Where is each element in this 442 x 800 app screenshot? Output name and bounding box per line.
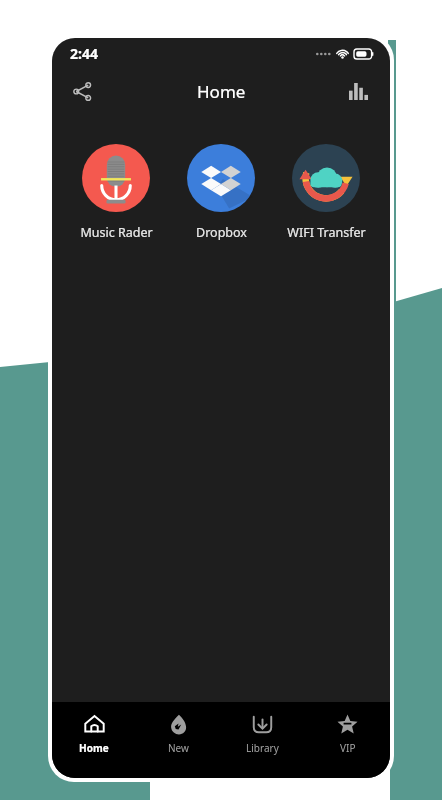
staticText: Home xyxy=(79,741,109,755)
button[interactable]: Home xyxy=(52,702,136,778)
staticText: Home xyxy=(197,80,246,103)
staticText: Music Rader xyxy=(80,224,153,241)
staticText: WIFI Transfer xyxy=(287,224,366,241)
button[interactable]: Library xyxy=(220,702,305,778)
button[interactable]: Share xyxy=(60,69,104,113)
button[interactable]: WIFI Transfer xyxy=(275,140,377,243)
button[interactable]: Dropbox xyxy=(170,140,272,243)
staticText: New xyxy=(168,741,189,755)
button[interactable]: Music Rader xyxy=(65,140,167,243)
button[interactable]: VIP xyxy=(305,702,390,778)
button[interactable]: New xyxy=(136,702,220,778)
staticText: VIP xyxy=(340,741,356,755)
button[interactable]: Equalizer xyxy=(336,69,380,113)
staticText: Dropbox xyxy=(196,224,247,241)
staticText: Library xyxy=(246,741,279,755)
staticText: 2:44 xyxy=(70,44,98,63)
